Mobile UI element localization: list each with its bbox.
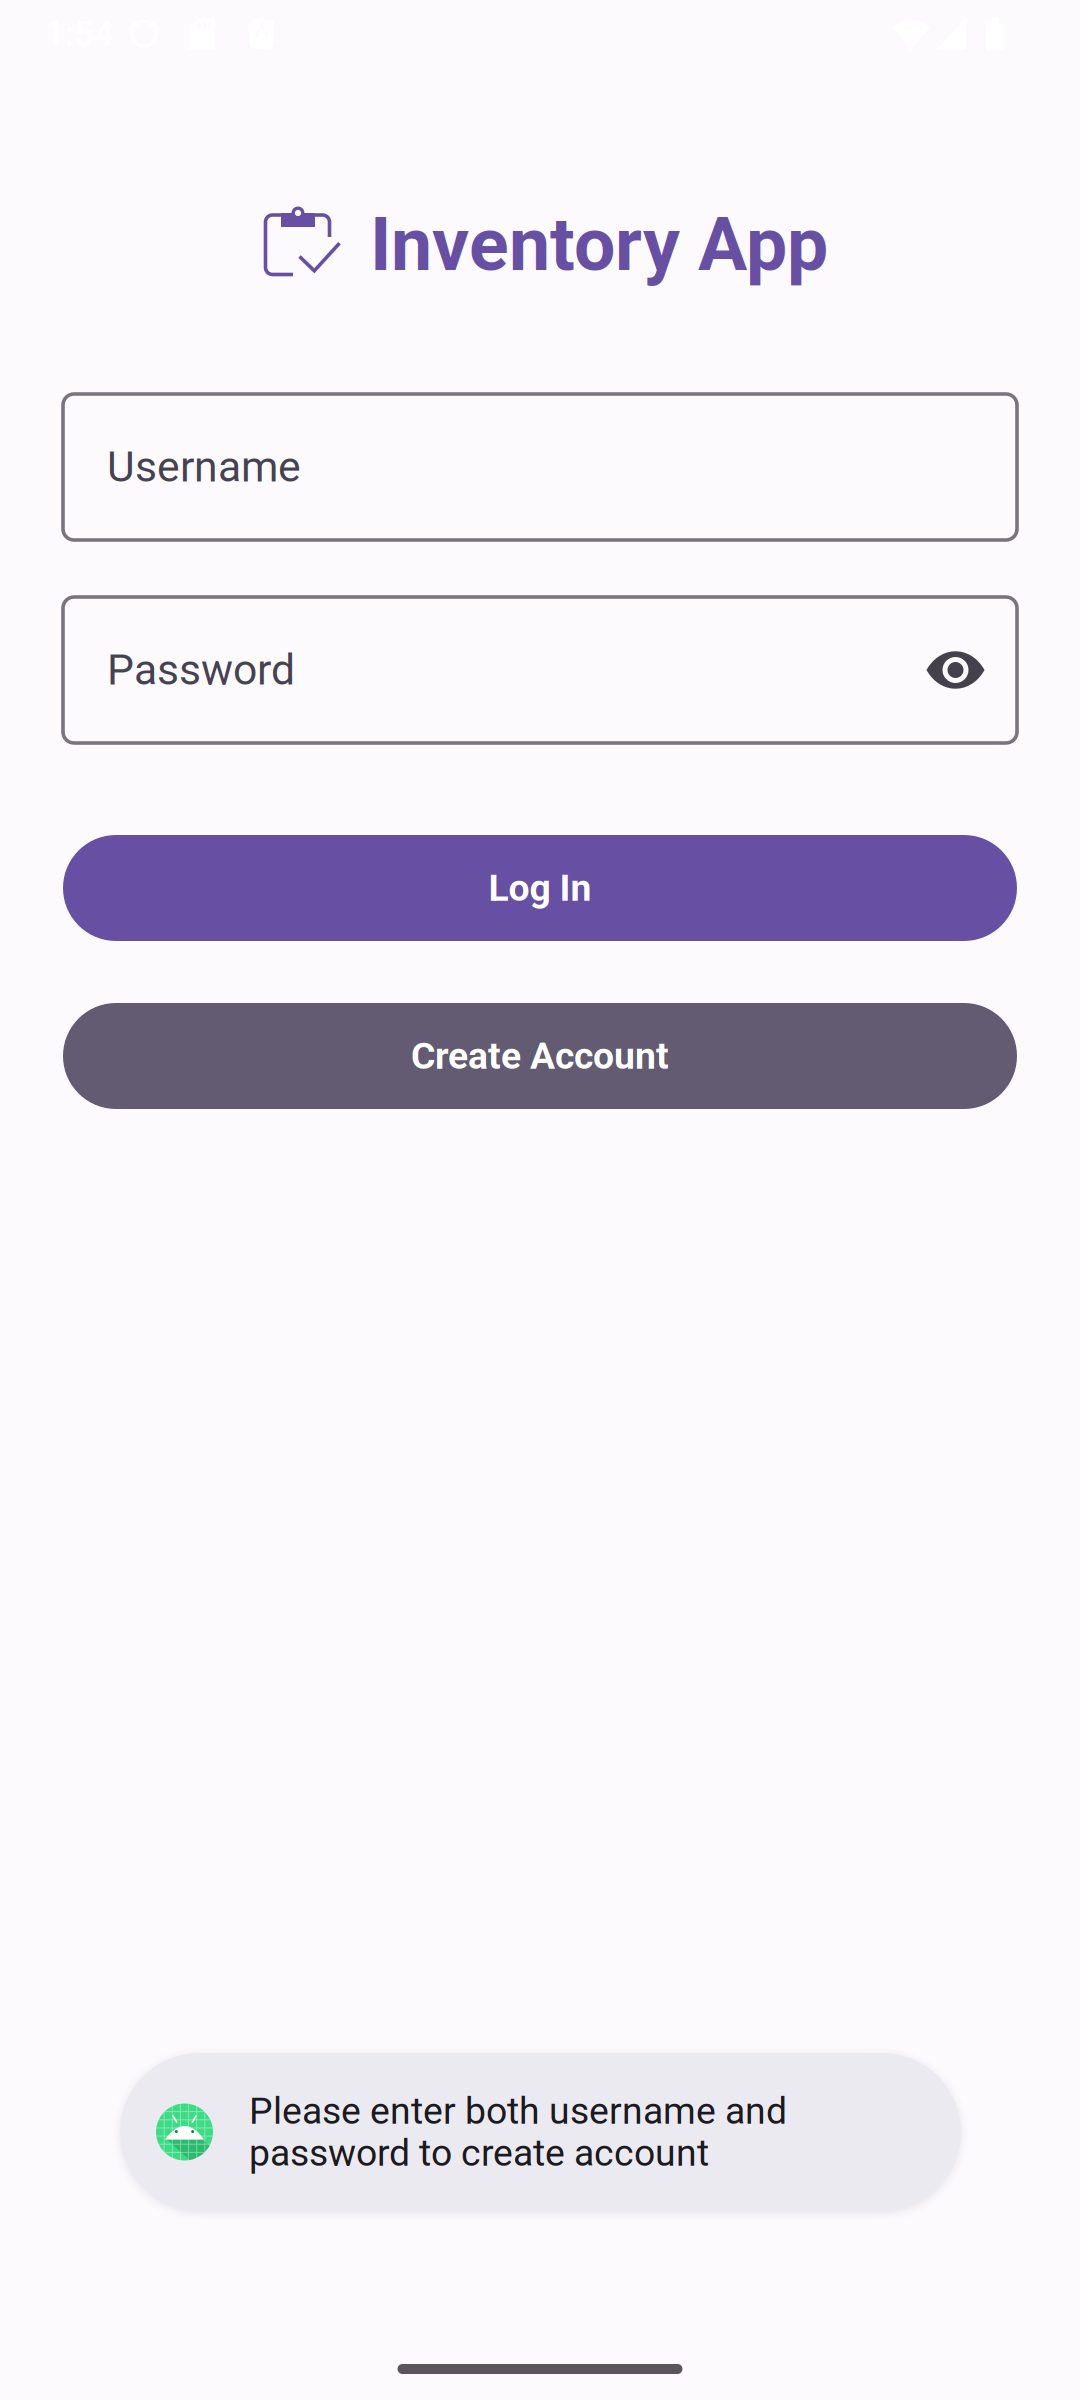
staticText: Log In xyxy=(488,866,591,910)
button[interactable]: Username xyxy=(63,394,1017,540)
staticText: Create Account xyxy=(411,1034,669,1078)
staticText: Inventory App xyxy=(370,202,828,288)
button[interactable]: Show password xyxy=(910,597,1017,743)
staticText: Username xyxy=(107,442,301,492)
button[interactable]: Log In xyxy=(63,835,1017,941)
staticText: Please enter both username and xyxy=(249,2089,787,2133)
staticText: password to create account xyxy=(249,2131,709,2175)
button[interactable]: Create Account xyxy=(63,1003,1017,1109)
button[interactable]: Password xyxy=(63,597,1017,743)
staticText: Password xyxy=(107,645,295,695)
